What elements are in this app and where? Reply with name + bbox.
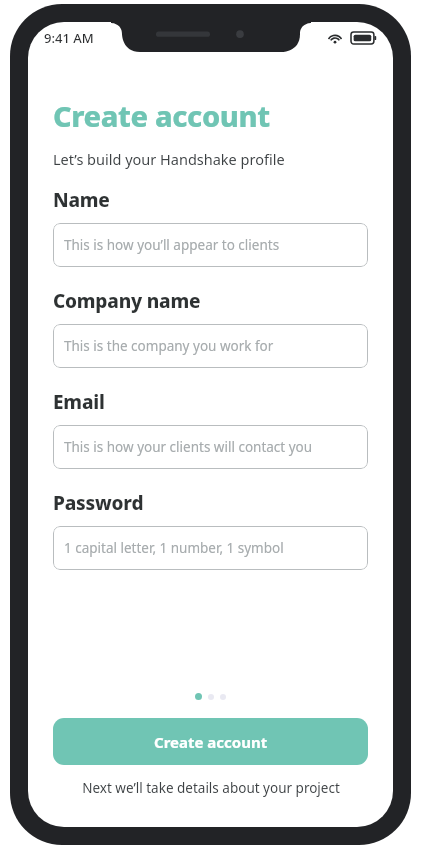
button[interactable]: This is how you’ll appear to clients — [53, 223, 368, 267]
other: Wi-Fi signal — [327, 32, 343, 44]
staticText: Let’s build your Handshake profile — [53, 149, 285, 169]
button[interactable]: This is the company you work for — [53, 324, 368, 368]
other: Battery — [351, 32, 377, 44]
staticText: Password — [53, 490, 144, 516]
staticText: Name — [53, 187, 110, 213]
staticText: This is how you’ll appear to clients — [64, 236, 280, 254]
staticText: This is how your clients will contact yo… — [64, 438, 313, 456]
button[interactable]: Create account — [53, 718, 368, 765]
staticText: This is the company you work for — [64, 337, 274, 355]
staticText: Next we’ll take details about your proje… — [82, 779, 340, 797]
button[interactable]: 1 capital letter, 1 number, 1 symbol — [53, 526, 368, 570]
staticText: Create account — [53, 96, 270, 135]
button[interactable]: This is how your clients will contact yo… — [53, 425, 368, 469]
staticText: Email — [53, 389, 105, 415]
staticText: Company name — [53, 288, 201, 314]
staticText: 1 capital letter, 1 number, 1 symbol — [64, 539, 284, 557]
staticText: Create account — [154, 732, 268, 752]
staticText: 9:41 AM — [44, 29, 94, 47]
